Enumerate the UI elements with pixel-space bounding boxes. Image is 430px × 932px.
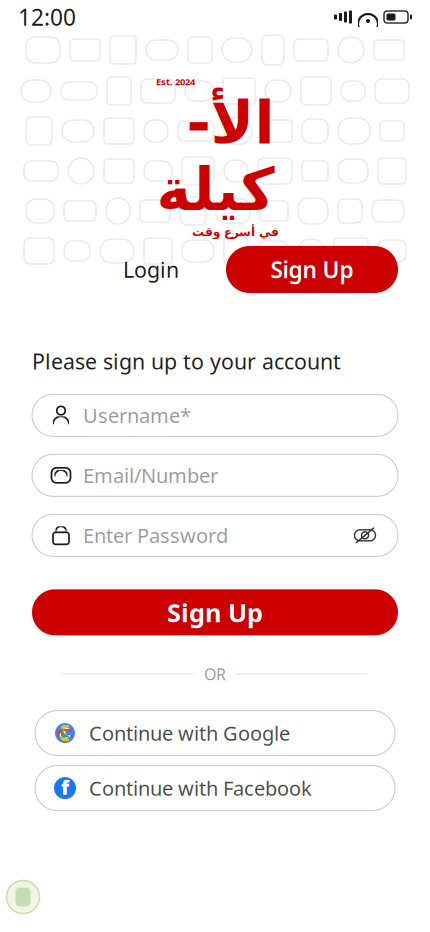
button[interactable]: Show password xyxy=(350,522,380,548)
button[interactable]: f xyxy=(35,766,395,811)
staticText: OR xyxy=(204,663,226,684)
staticText: الأكيلة xyxy=(156,90,274,223)
staticText: Est. 2024 xyxy=(156,75,195,88)
button[interactable]: Sign Up xyxy=(226,246,398,293)
staticText: Email/Number xyxy=(83,462,218,489)
staticText: Login xyxy=(123,255,179,284)
staticText: 12:00 xyxy=(18,2,76,32)
button[interactable]: Email/Number xyxy=(32,454,398,496)
button[interactable]: Username* xyxy=(32,394,398,436)
staticText: Continue with Facebook xyxy=(89,775,312,801)
staticText: Please sign up to your account xyxy=(32,347,341,375)
staticText: Enter Password xyxy=(83,522,228,549)
staticText: Sign Up xyxy=(270,254,353,284)
button[interactable]: Sign Up xyxy=(32,589,398,635)
button[interactable]: Login xyxy=(76,246,226,293)
staticText: في أسرع وقت xyxy=(191,225,278,239)
staticText: Sign Up xyxy=(167,595,263,629)
staticText: f xyxy=(61,774,69,800)
button[interactable]: Continue with Google xyxy=(35,711,395,756)
button[interactable]: Enter Password xyxy=(32,514,398,556)
staticText: Continue with Google xyxy=(89,720,290,746)
staticText: Username* xyxy=(83,402,191,429)
